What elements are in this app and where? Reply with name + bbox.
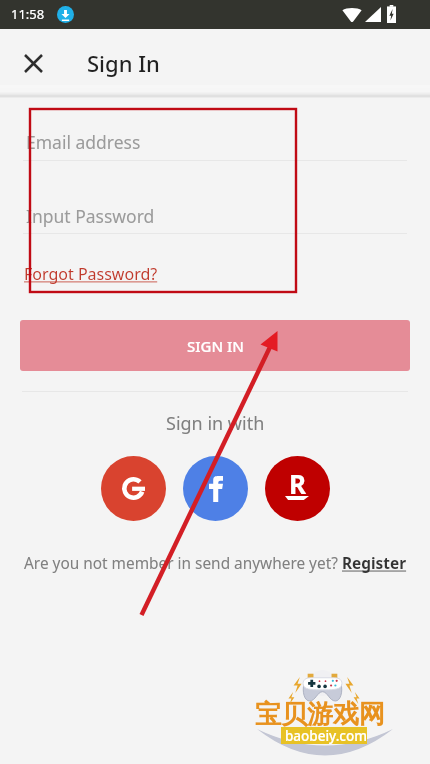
button[interactable]: Sign in with Rakuten xyxy=(265,456,330,521)
button[interactable]: Close xyxy=(0,34,66,92)
staticText: Input Password xyxy=(26,204,155,228)
button[interactable]: Register xyxy=(342,553,407,574)
staticText: Sign In xyxy=(87,48,160,78)
staticText: Are you not member in send anywhere yet? xyxy=(24,553,342,574)
staticText: Register xyxy=(342,553,407,574)
staticText: Forgot Password? xyxy=(24,263,158,285)
button[interactable]: Sign in with Google xyxy=(101,456,166,521)
staticText: SIGN IN xyxy=(187,336,244,356)
staticText: Email address xyxy=(26,130,141,154)
button[interactable]: Sign in with Facebook xyxy=(183,456,248,521)
button[interactable]: Forgot Password? xyxy=(24,263,158,285)
staticText: R xyxy=(289,466,307,500)
staticText: 11:58 xyxy=(11,5,45,23)
staticText: Sign in with xyxy=(166,411,265,436)
button[interactable]: SIGN IN xyxy=(20,320,410,371)
staticText: 宝贝游戏网 xyxy=(255,698,385,731)
staticText: baobeiy.com xyxy=(285,727,368,745)
